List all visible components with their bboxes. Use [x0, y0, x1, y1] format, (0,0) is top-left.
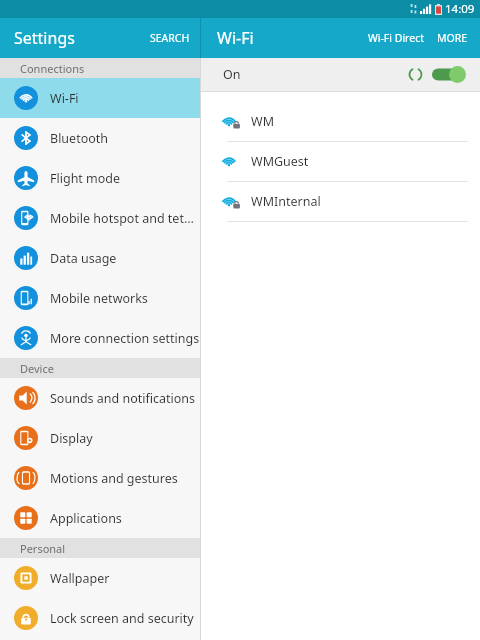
staticText: SEARCH — [150, 31, 190, 45]
staticText: Settings — [14, 27, 75, 49]
button[interactable]: Mobile networks — [0, 278, 200, 318]
button[interactable]: On — [201, 58, 480, 91]
button[interactable]: WM — [201, 102, 480, 142]
staticText: Device — [20, 361, 54, 376]
staticText: Applications — [50, 510, 122, 527]
staticText: Personal — [20, 541, 66, 556]
button[interactable]: WMInternal — [201, 182, 480, 222]
staticText: WM — [251, 113, 274, 130]
button[interactable]: Applications — [0, 498, 200, 538]
staticText: More connection settings — [50, 330, 200, 347]
staticText: 14:09 — [445, 1, 475, 17]
button[interactable]: Mobile hotspot and tether.. — [0, 198, 200, 238]
staticText: Data usage — [50, 250, 117, 267]
button[interactable]: Flight mode — [0, 158, 200, 198]
button[interactable]: Bluetooth — [0, 118, 200, 158]
staticText: WMGuest — [251, 153, 309, 170]
button[interactable]: Motions and gestures — [0, 458, 200, 498]
button[interactable]: More connection settings — [0, 318, 200, 358]
staticText: On — [223, 66, 241, 83]
staticText: Flight mode — [50, 170, 121, 187]
staticText: Mobile hotspot and tether.. — [50, 210, 200, 227]
staticText: Display — [50, 430, 93, 447]
button[interactable]: Sounds and notifications — [0, 378, 200, 418]
staticText: WMInternal — [251, 193, 321, 210]
staticText: Wi-Fi — [217, 27, 254, 49]
button[interactable]: Lock screen and security — [0, 598, 200, 638]
button[interactable]: Wi-Fi on — [432, 66, 466, 83]
button[interactable]: Data usage — [0, 238, 200, 278]
staticText: Wallpaper — [50, 570, 110, 587]
button[interactable]: MORE — [431, 18, 480, 58]
staticText: Wi-Fi Direct — [368, 31, 424, 45]
button[interactable]: SEARCH — [140, 18, 200, 58]
staticText: Mobile networks — [50, 290, 148, 307]
other: Scanning — [408, 67, 423, 82]
staticText: Motions and gestures — [50, 470, 178, 487]
button[interactable]: Wallpaper — [0, 558, 200, 598]
staticText: Lock screen and security — [50, 610, 194, 627]
button[interactable]: Display — [0, 418, 200, 458]
button[interactable]: Wi-Fi Direct — [361, 18, 431, 58]
button[interactable]: WMGuest — [201, 142, 480, 182]
staticText: MORE — [437, 31, 468, 45]
staticText: Wi-Fi — [50, 90, 79, 107]
staticText: Connections — [20, 61, 85, 76]
staticText: Bluetooth — [50, 130, 109, 147]
button[interactable]: Wi-Fi — [0, 78, 200, 118]
staticText: Sounds and notifications — [50, 390, 196, 407]
